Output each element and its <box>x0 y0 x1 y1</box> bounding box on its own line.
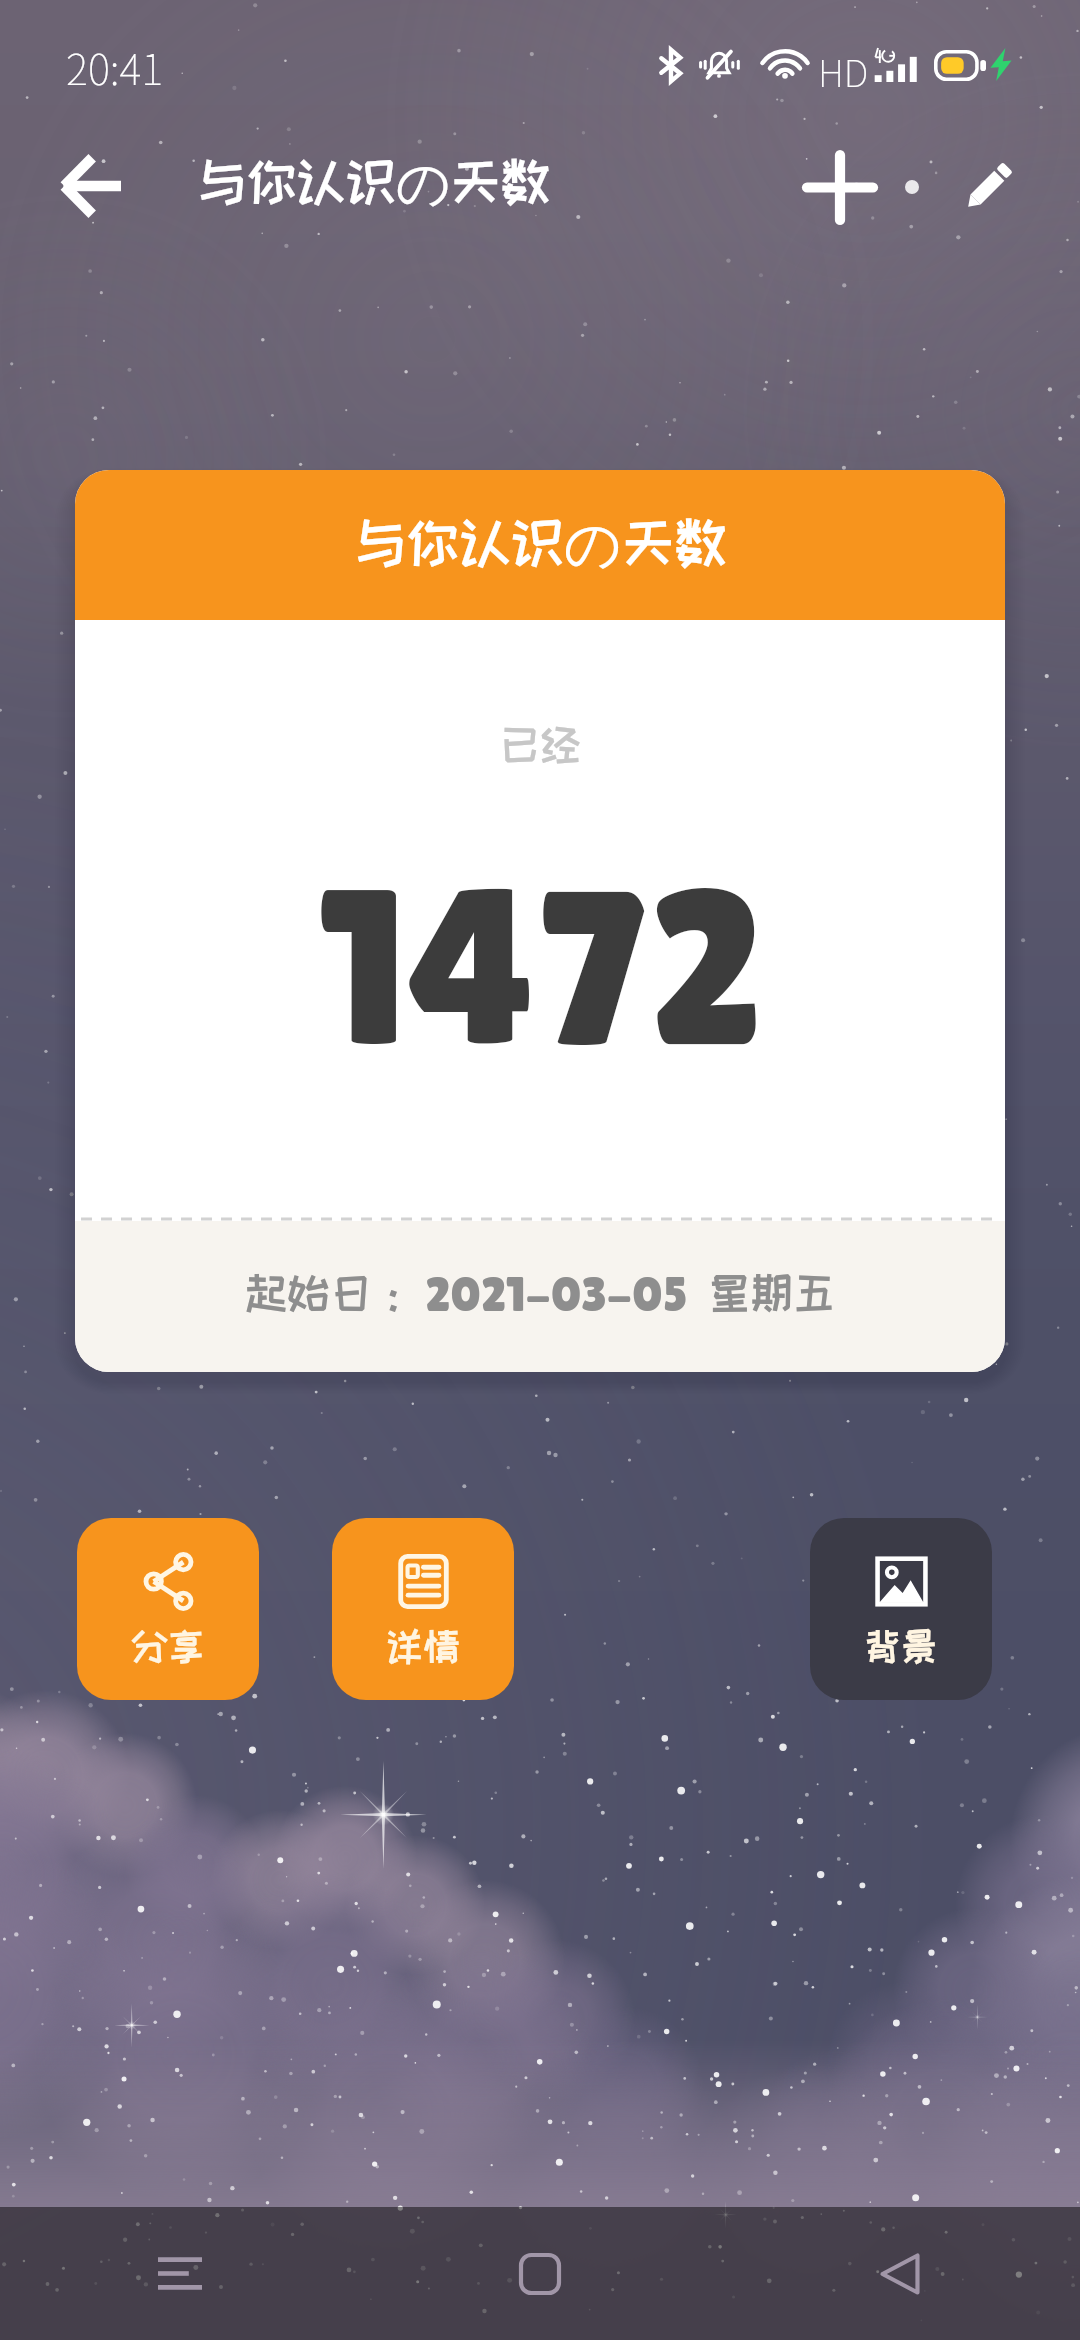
button[interactable]: Add <box>780 127 900 247</box>
staticText: 星期五 <box>708 1270 835 1316</box>
button[interactable]: 与你认识の天数 <box>75 470 1005 1372</box>
button[interactable]: Back <box>31 126 151 246</box>
button[interactable]: 背景 <box>810 1518 992 1700</box>
staticText: 背景 <box>864 1626 938 1666</box>
staticText: 2021-03-05 <box>425 1267 688 1322</box>
button[interactable]: Home <box>360 2207 720 2340</box>
staticText: 1472 <box>318 842 763 1092</box>
staticText: 详情 <box>386 1626 460 1666</box>
staticText: 20:41 <box>66 36 164 97</box>
staticText: HD <box>818 44 869 98</box>
button[interactable]: Recent apps <box>0 2207 360 2340</box>
staticText: 分享 <box>131 1626 205 1666</box>
button[interactable]: 分享 <box>77 1518 259 1700</box>
button[interactable]: Edit <box>928 127 1048 247</box>
staticText: 起始日： <box>245 1270 415 1316</box>
staticText: 与你认识の天数 <box>354 509 727 581</box>
button[interactable]: Back <box>720 2207 1080 2340</box>
staticText: 已经 <box>500 722 581 766</box>
button[interactable]: 详情 <box>332 1518 514 1700</box>
staticText: 与你认识の天数 <box>197 150 551 218</box>
